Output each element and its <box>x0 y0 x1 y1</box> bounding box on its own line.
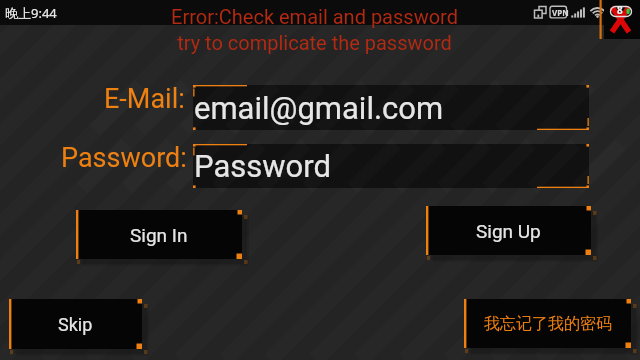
staticText: E-Mail: <box>104 83 185 115</box>
staticText: 8 <box>617 3 623 17</box>
staticText: VPN <box>552 7 569 18</box>
button[interactable]: email@gmail.com <box>193 85 589 130</box>
staticText: Sign In <box>130 224 188 246</box>
button[interactable]: 我忘记了我的密码 <box>464 299 631 348</box>
staticText: Skip <box>58 314 93 335</box>
staticText: Password: <box>61 142 187 174</box>
staticText: email@gmail.com <box>194 90 444 126</box>
staticText: Error:Check email and password <box>171 5 458 28</box>
button[interactable]: Sign Up <box>426 206 591 255</box>
staticText: 我忘记了我的密码 <box>484 314 612 334</box>
staticText: 晚上9:44 <box>5 4 57 22</box>
button[interactable]: Sign In <box>76 210 242 259</box>
staticText: try to complicate the password <box>177 31 452 54</box>
staticText: Password <box>194 148 331 184</box>
button[interactable]: Skip <box>9 299 142 349</box>
staticText: Sign Up <box>476 220 541 242</box>
button[interactable]: Password <box>193 144 589 188</box>
